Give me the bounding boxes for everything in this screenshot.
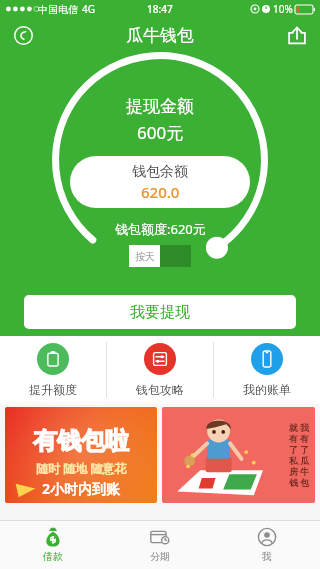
button[interactable]: 分期	[106, 521, 213, 569]
staticText: 有钱包啦	[33, 426, 129, 456]
button[interactable]: 借款	[0, 521, 106, 569]
staticText: 房	[289, 466, 298, 477]
button[interactable]: 我要提现	[24, 295, 296, 329]
staticText: 10%	[273, 2, 293, 16]
staticText: 提现金额	[126, 96, 194, 117]
staticText: 我	[300, 422, 309, 433]
button[interactable]: Back	[8, 20, 38, 50]
staticText: 了	[289, 444, 298, 455]
button[interactable]: 我的账单	[214, 336, 320, 404]
staticText: 我的账单	[243, 382, 291, 397]
button[interactable]: 提升额度	[0, 336, 106, 404]
staticText: 600元	[137, 121, 184, 144]
button[interactable]: 按天	[129, 245, 191, 267]
button[interactable]: 就	[162, 407, 315, 503]
staticText: 按天	[135, 250, 155, 263]
staticText: 牛	[300, 466, 309, 477]
staticText: 4G	[82, 2, 95, 16]
button[interactable]: 钱包余额	[70, 156, 250, 208]
button[interactable]: Share	[282, 20, 312, 50]
staticText: 中国电信	[38, 3, 78, 16]
staticText: 包	[300, 477, 309, 488]
staticText: 我要提现	[130, 303, 190, 322]
staticText: 2小时内到账	[42, 479, 121, 498]
staticText: 私	[289, 455, 298, 466]
staticText: 钱	[289, 477, 298, 488]
staticText: 有	[289, 433, 298, 444]
staticText: 随时 随地 随意花	[36, 460, 127, 476]
staticText: 620.0	[141, 182, 180, 202]
staticText: 分期	[150, 550, 170, 563]
button[interactable]: 钱包攻略	[107, 336, 213, 404]
button[interactable]: 有钱包啦	[5, 407, 157, 503]
staticText: 我	[262, 550, 272, 563]
staticText: 瓜	[300, 455, 309, 466]
staticText: 钱包攻略	[136, 382, 184, 397]
staticText: 借款	[43, 550, 63, 563]
staticText: 了	[300, 444, 309, 455]
staticText: 钱包余额	[132, 163, 188, 181]
staticText: 瓜牛钱包	[126, 25, 194, 46]
button[interactable]: 我	[213, 521, 320, 569]
staticText: 钱包额度:620元	[115, 220, 206, 238]
staticText: 18:47	[147, 2, 173, 16]
staticText: 提升额度	[29, 382, 77, 397]
staticText: 有	[300, 433, 309, 444]
staticText: 就	[289, 422, 298, 433]
